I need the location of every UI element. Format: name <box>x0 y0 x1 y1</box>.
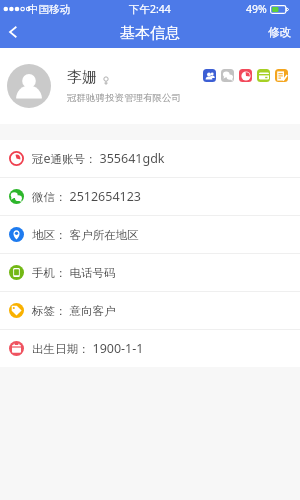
button[interactable]: 手机： 电话号码 <box>0 254 300 291</box>
button[interactable]: Notes <box>275 69 288 82</box>
staticText: 标签： 意向客户 <box>32 303 116 319</box>
button[interactable]: 微信： 2512654123 <box>0 178 300 215</box>
staticText: 微信： 2512654123 <box>32 188 141 205</box>
staticText: 出生日期： 1900-1-1 <box>32 340 144 357</box>
button[interactable]: 标签： 意向客户 <box>0 292 300 329</box>
button[interactable]: 地区： 客户所在地区 <box>0 216 300 253</box>
staticText: 地区： 客户所在地区 <box>32 227 139 243</box>
button[interactable]: Contacts <box>203 69 216 82</box>
staticText: 49% <box>246 2 267 16</box>
staticText: 冠e通账号： 355641gdk <box>32 150 165 167</box>
button[interactable]: 出生日期： 1900-1-1 <box>0 330 300 367</box>
button[interactable]: Card <box>257 69 270 82</box>
staticText: 修改 <box>268 25 291 39</box>
staticText: 手机： 电话号码 <box>32 265 116 281</box>
staticText: 李姗 <box>67 68 97 87</box>
button[interactable]: 冠e通账号： 355641gdk <box>0 140 300 177</box>
staticText: 冠群驰骋投资管理有限公司 <box>67 92 181 104</box>
button[interactable]: Back <box>0 18 28 48</box>
staticText: 下午2:44 <box>129 2 171 16</box>
button[interactable]: Statistics <box>239 69 252 82</box>
button[interactable]: WeChat <box>221 69 234 82</box>
button[interactable]: 修改 <box>258 18 300 48</box>
staticText: 基本信息 <box>120 24 180 43</box>
staticText: 中国移动 <box>28 3 70 16</box>
